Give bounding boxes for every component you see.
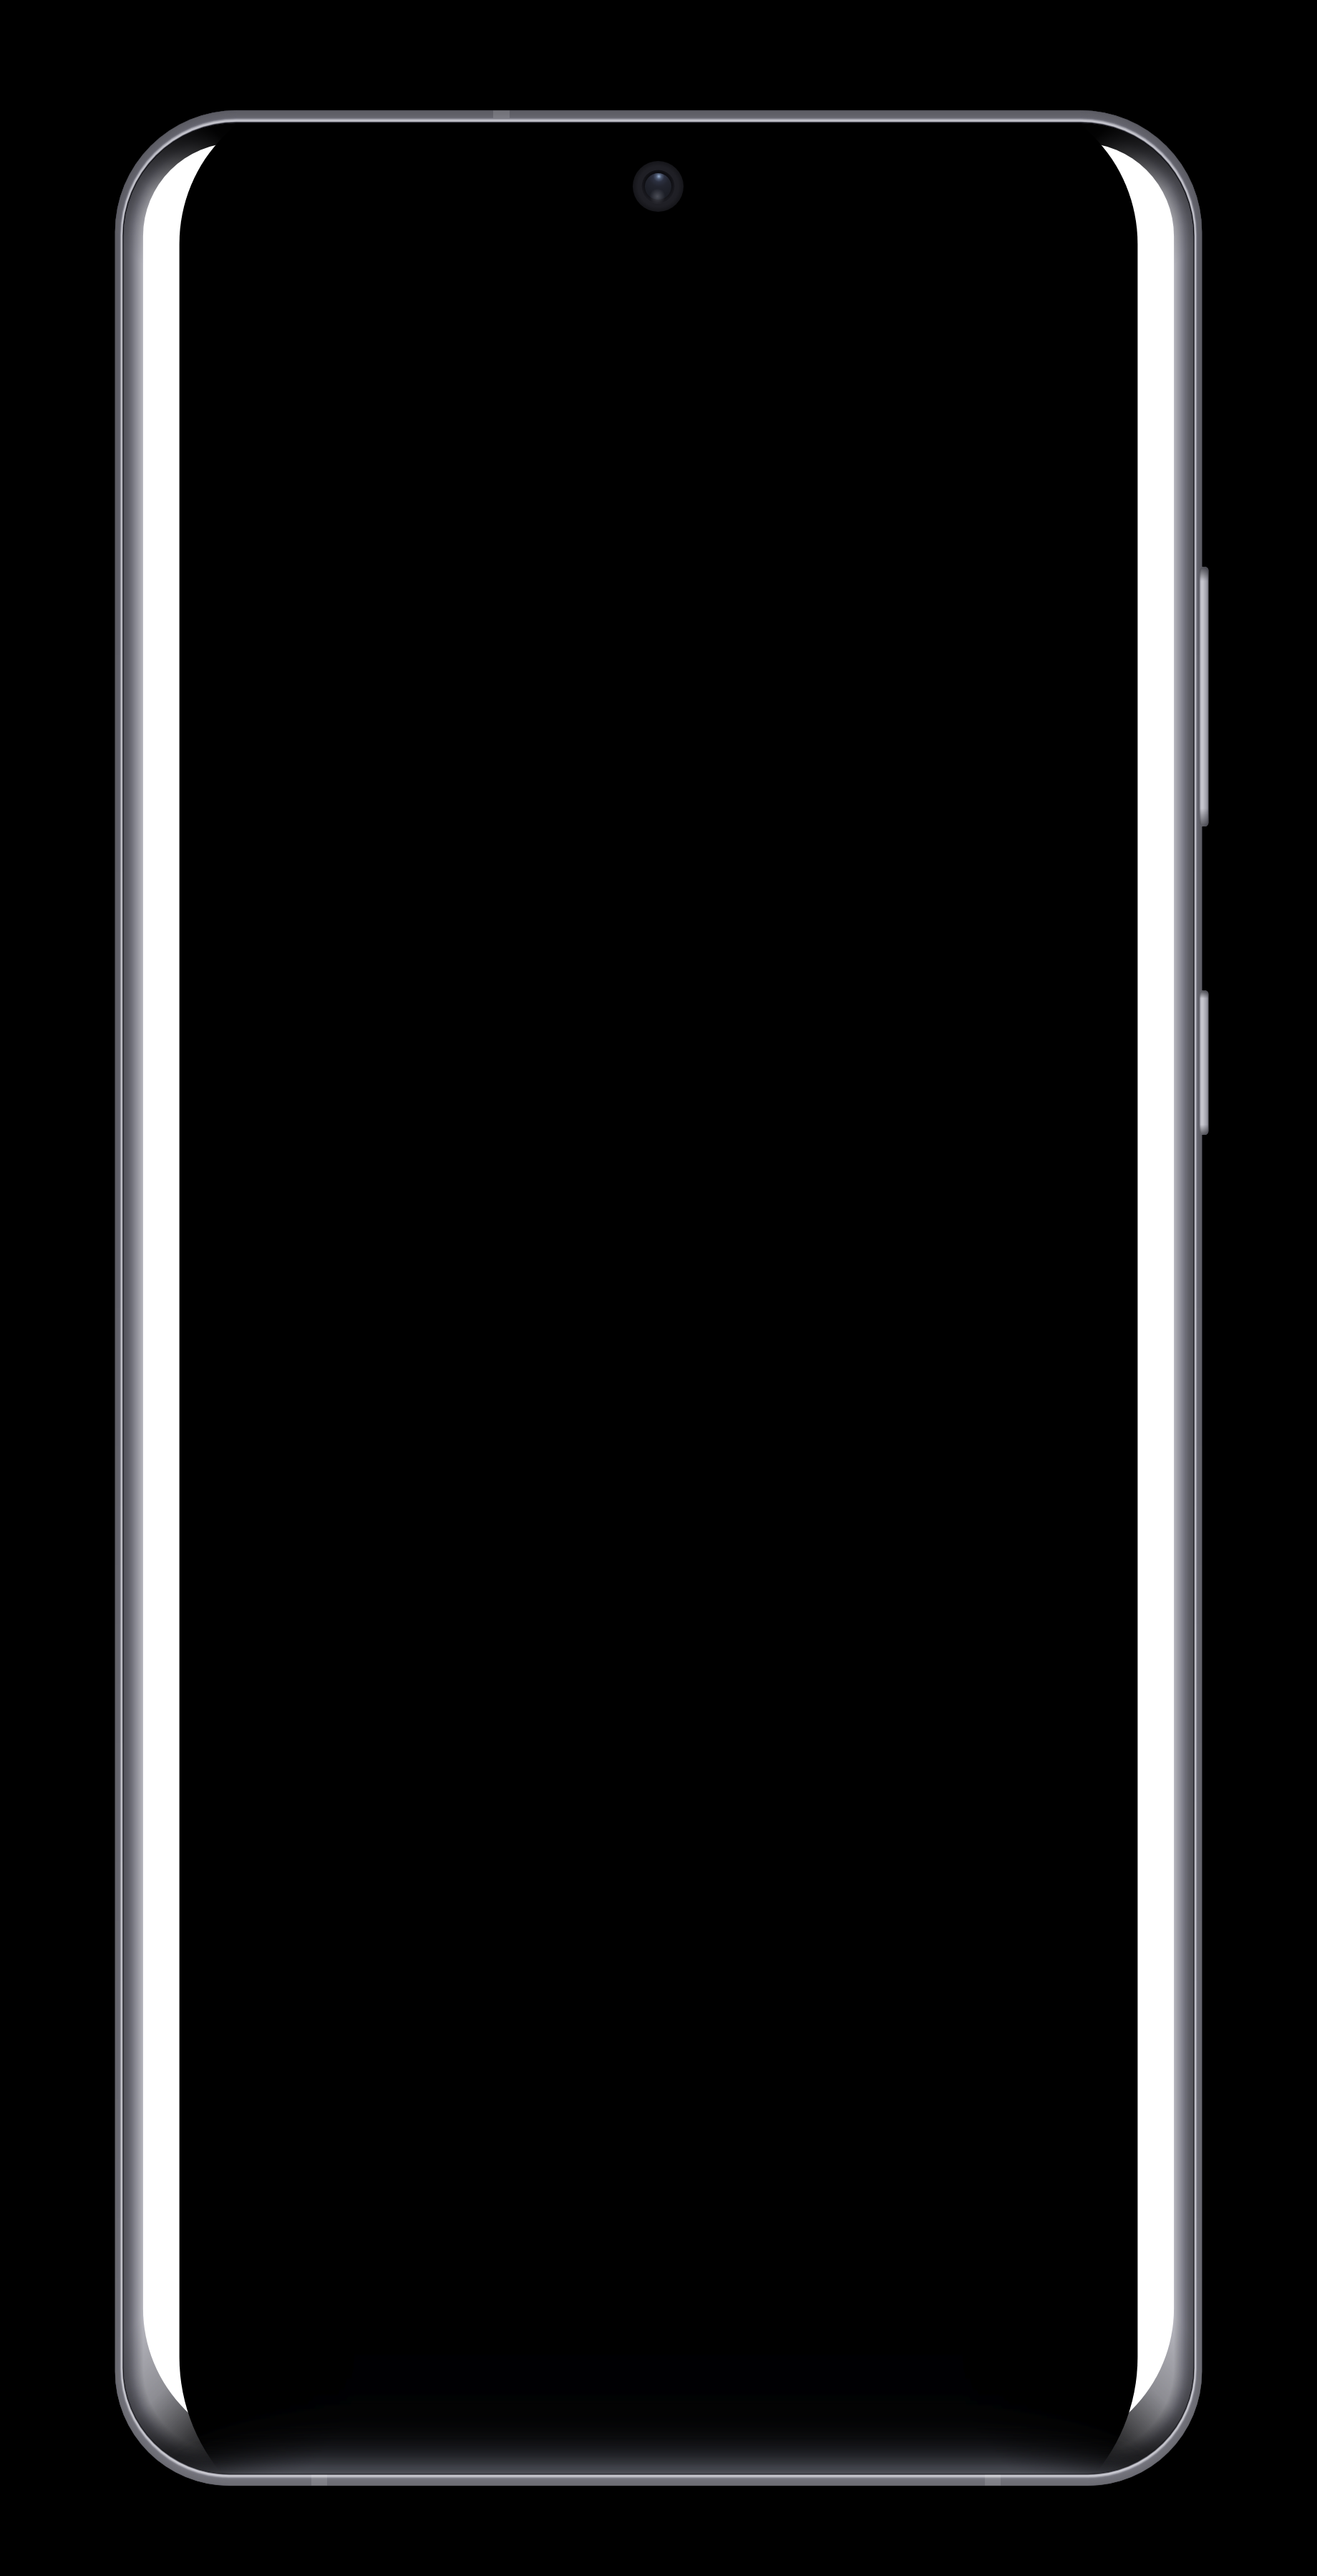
button[interactable]: Power	[1200, 990, 1209, 1135]
button[interactable]: Volume	[1200, 567, 1209, 826]
